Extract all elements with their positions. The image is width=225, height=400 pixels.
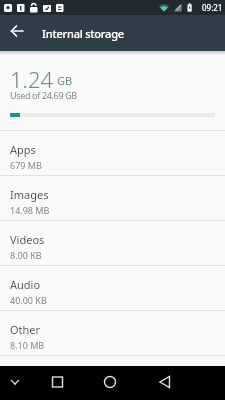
- staticText: 8.00 KB: [10, 249, 42, 261]
- staticText: 14.98 MB: [10, 204, 50, 216]
- button[interactable]: Audio: [0, 266, 225, 310]
- staticText: Images: [10, 187, 49, 202]
- button[interactable]: [153, 371, 176, 394]
- button[interactable]: Videos: [0, 221, 225, 265]
- staticText: 8.10 MB: [10, 339, 45, 351]
- staticText: Audio: [10, 277, 41, 292]
- staticText: GB: [57, 73, 73, 88]
- staticText: 679 MB: [10, 159, 42, 171]
- staticText: Videos: [10, 232, 45, 247]
- button[interactable]: Images: [0, 176, 225, 220]
- staticText: Internal storage: [42, 26, 124, 41]
- staticText: Other: [10, 322, 41, 337]
- button[interactable]: [0, 15, 36, 51]
- button[interactable]: Apps: [0, 131, 225, 175]
- staticText: 1.24: [10, 64, 54, 94]
- staticText: Used of 24.69 GB: [10, 89, 77, 101]
- button[interactable]: [46, 371, 69, 394]
- button[interactable]: Other: [0, 311, 225, 355]
- button[interactable]: [98, 371, 121, 394]
- staticText: Apps: [10, 142, 36, 157]
- staticText: 09:21: [202, 2, 223, 13]
- staticText: 40.00 KB: [10, 294, 47, 306]
- button[interactable]: [7, 380, 23, 396]
